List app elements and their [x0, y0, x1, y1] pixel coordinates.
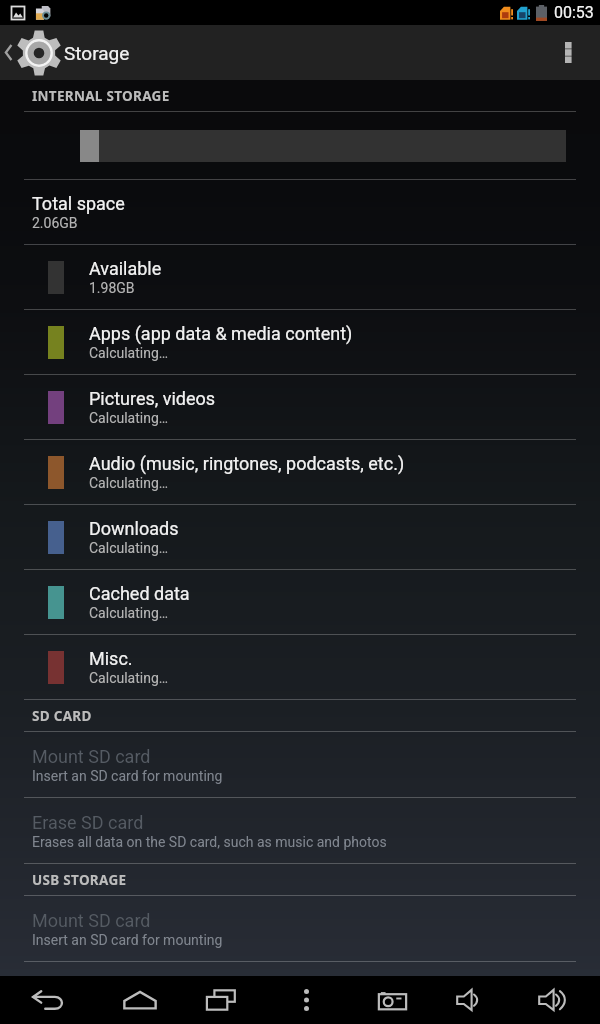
staticText: Calculating…	[89, 670, 169, 686]
staticText: 1.98GB	[89, 280, 135, 296]
staticText: 00:53	[554, 3, 594, 22]
staticText: Insert an SD card for mounting	[32, 932, 223, 948]
button[interactable]: Audio (music, ringtones, podcasts, etc.)	[0, 440, 600, 505]
button[interactable]: Misc.	[0, 635, 600, 700]
staticText: Available	[89, 258, 162, 279]
staticText: Calculating…	[89, 345, 169, 361]
staticText: Apps (app data & media content)	[89, 323, 353, 344]
button[interactable]: Mount SD card	[0, 896, 600, 962]
staticText: Mount SD card	[32, 910, 151, 931]
staticText: SD CARD	[32, 707, 92, 725]
staticText: Pictures, videos	[89, 388, 216, 409]
staticText: Calculating…	[89, 605, 169, 621]
staticText: USB STORAGE	[32, 871, 127, 889]
staticText: Audio (music, ringtones, podcasts, etc.)	[89, 453, 405, 474]
button[interactable]: Pictures, videos	[0, 375, 600, 440]
staticText: Misc.	[89, 648, 133, 669]
staticText: INTERNAL STORAGE	[32, 87, 170, 105]
button[interactable]: Home	[105, 976, 175, 1024]
button[interactable]: Navigate up	[0, 25, 140, 80]
button[interactable]: Screenshot	[357, 976, 427, 1024]
staticText: Erase SD card	[32, 812, 144, 833]
button[interactable]: Back	[13, 976, 83, 1024]
button[interactable]: Volume down	[436, 976, 506, 1024]
staticText: Calculating…	[89, 540, 169, 556]
staticText: Calculating…	[89, 475, 169, 491]
staticText: Mount SD card	[32, 746, 151, 767]
staticText: Calculating…	[89, 410, 169, 426]
staticText: Insert an SD card for mounting	[32, 768, 223, 784]
button[interactable]: Apps (app data & media content)	[0, 310, 600, 375]
button[interactable]: More options	[537, 25, 600, 80]
button[interactable]: Menu	[271, 976, 341, 1024]
button[interactable]: Mount SD card	[0, 732, 600, 798]
button[interactable]: Total space	[0, 180, 600, 245]
button[interactable]: Downloads	[0, 505, 600, 570]
button[interactable]: Cached data	[0, 570, 600, 635]
staticText: Storage	[64, 42, 130, 64]
button[interactable]: Erase SD card	[0, 798, 600, 864]
staticText: Downloads	[89, 518, 179, 539]
staticText: Total space	[32, 193, 125, 214]
staticText: 2.06GB	[32, 215, 78, 231]
staticText: Erases all data on the SD card, such as …	[32, 834, 387, 850]
staticText: Cached data	[89, 583, 190, 604]
button[interactable]: Available	[0, 245, 600, 310]
button[interactable]: Recent apps	[186, 976, 256, 1024]
button[interactable]: Volume up	[518, 976, 588, 1024]
